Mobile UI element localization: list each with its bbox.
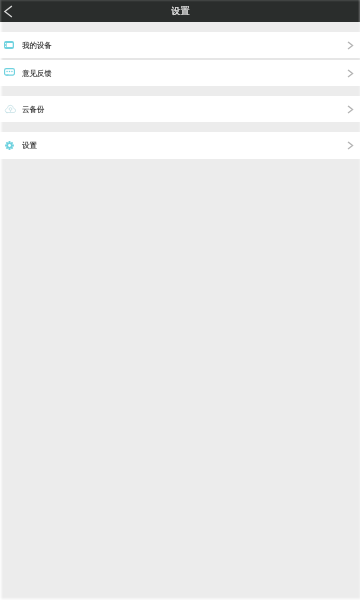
button[interactable]: 我的设备 <box>0 32 360 58</box>
button[interactable]: 意见反馈 <box>0 60 360 86</box>
staticText: 意见反馈 <box>22 69 52 78</box>
staticText: 设置 <box>171 5 190 17</box>
staticText: 云备份 <box>22 105 45 114</box>
button[interactable]: Back <box>0 0 24 22</box>
staticText: 设置 <box>22 141 37 150</box>
button[interactable]: 设置 <box>0 132 360 159</box>
button[interactable]: 云备份 <box>0 96 360 122</box>
staticText: 我的设备 <box>22 41 52 50</box>
